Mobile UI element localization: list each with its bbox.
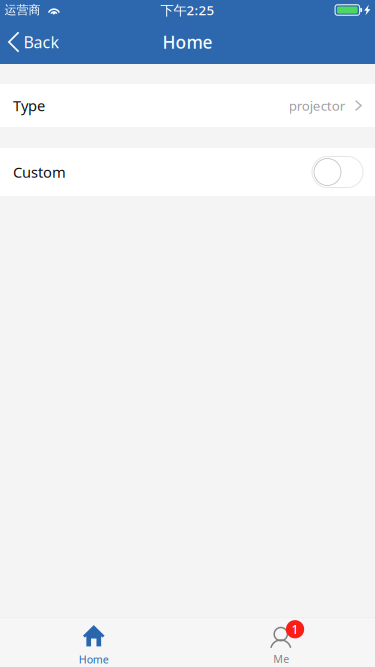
staticText: projector xyxy=(289,97,346,114)
button[interactable]: 1 xyxy=(187,617,375,667)
button[interactable] xyxy=(312,156,363,187)
button[interactable]: Back xyxy=(0,20,69,64)
staticText: Custom xyxy=(13,162,66,182)
staticText: Back xyxy=(23,31,59,53)
staticText: 1 xyxy=(291,621,298,637)
button[interactable]: Home xyxy=(0,617,187,667)
staticText: Home xyxy=(79,652,109,667)
staticText: 运营商 xyxy=(5,3,41,17)
staticText: Home xyxy=(162,30,212,53)
staticText: Me xyxy=(273,652,289,666)
staticText: 下午2:25 xyxy=(160,1,214,19)
staticText: Type xyxy=(13,96,45,115)
button[interactable]: Type xyxy=(0,84,375,127)
